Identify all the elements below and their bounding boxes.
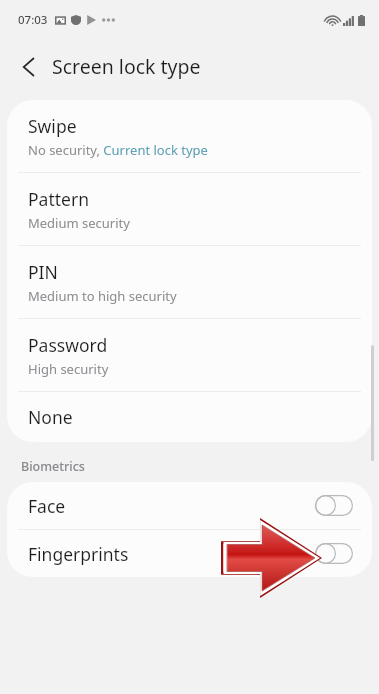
button[interactable]: Back	[10, 49, 46, 85]
staticText: Medium to high security	[28, 287, 177, 305]
button[interactable]: Pattern	[7, 173, 372, 245]
staticText: High security	[28, 360, 109, 378]
button[interactable]: Swipe	[7, 100, 372, 172]
button[interactable]: None	[7, 392, 372, 442]
button[interactable]: PIN	[7, 246, 372, 318]
button[interactable]: Fingerprints	[7, 530, 372, 577]
staticText: Fingerprints	[28, 542, 315, 566]
staticText: No security, Current lock type	[28, 141, 208, 159]
staticText: Face	[28, 494, 315, 518]
staticText: Biometrics	[21, 458, 85, 475]
staticText: Password	[28, 333, 108, 357]
staticText: Screen lock type	[52, 53, 201, 80]
button[interactable]: Face	[7, 482, 372, 529]
staticText: Swipe	[28, 114, 77, 138]
staticText: PIN	[28, 260, 58, 284]
staticText: 07:03	[18, 12, 48, 28]
button[interactable]: Password	[7, 319, 372, 391]
staticText: Pattern	[28, 187, 89, 211]
staticText: None	[28, 405, 73, 429]
staticText: Medium security	[28, 214, 130, 232]
